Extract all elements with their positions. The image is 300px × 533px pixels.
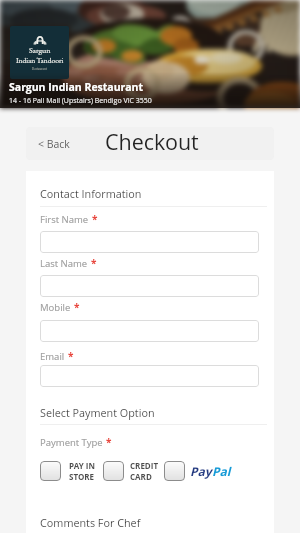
staticText: Pal bbox=[212, 463, 231, 479]
staticText: Payment Type bbox=[40, 436, 103, 449]
staticText: Checkout bbox=[105, 127, 199, 156]
staticText: Sargun Indian Restaurant bbox=[9, 80, 143, 94]
staticText: Indian Tandoori bbox=[16, 55, 64, 65]
staticText: Restaurant bbox=[32, 66, 47, 71]
button[interactable]: Select payment option bbox=[103, 461, 124, 481]
staticText: Sargun bbox=[29, 45, 51, 55]
button[interactable]: Select payment option bbox=[40, 461, 61, 481]
button[interactable]: < Back bbox=[26, 127, 82, 160]
staticText: Email bbox=[40, 350, 65, 363]
staticText: * bbox=[91, 256, 97, 270]
staticText: Pay bbox=[190, 463, 212, 479]
staticText: CARD bbox=[130, 471, 152, 482]
staticText: * bbox=[68, 349, 74, 363]
staticText: * bbox=[74, 300, 80, 314]
staticText: First Name bbox=[40, 213, 89, 226]
staticText: STORE bbox=[69, 471, 95, 482]
staticText: 14 - 16 Pall Mall (Upstairs) Bendigo VIC… bbox=[9, 96, 152, 106]
staticText: CREDIT bbox=[130, 460, 159, 471]
button[interactable] bbox=[40, 320, 259, 342]
button[interactable] bbox=[40, 231, 259, 253]
staticText: Comments For Chef bbox=[40, 515, 141, 530]
button[interactable]: Select payment option bbox=[164, 461, 185, 481]
staticText: * bbox=[92, 212, 98, 226]
button[interactable] bbox=[40, 365, 259, 387]
staticText: Mobile bbox=[40, 301, 71, 314]
staticText: < Back bbox=[38, 137, 70, 151]
staticText: * bbox=[106, 435, 112, 449]
staticText: Select Payment Option bbox=[40, 405, 155, 420]
staticText: PAY IN bbox=[69, 460, 95, 471]
button[interactable] bbox=[40, 275, 259, 297]
staticText: Contact Information bbox=[40, 186, 142, 201]
staticText: Last Name bbox=[40, 257, 88, 270]
